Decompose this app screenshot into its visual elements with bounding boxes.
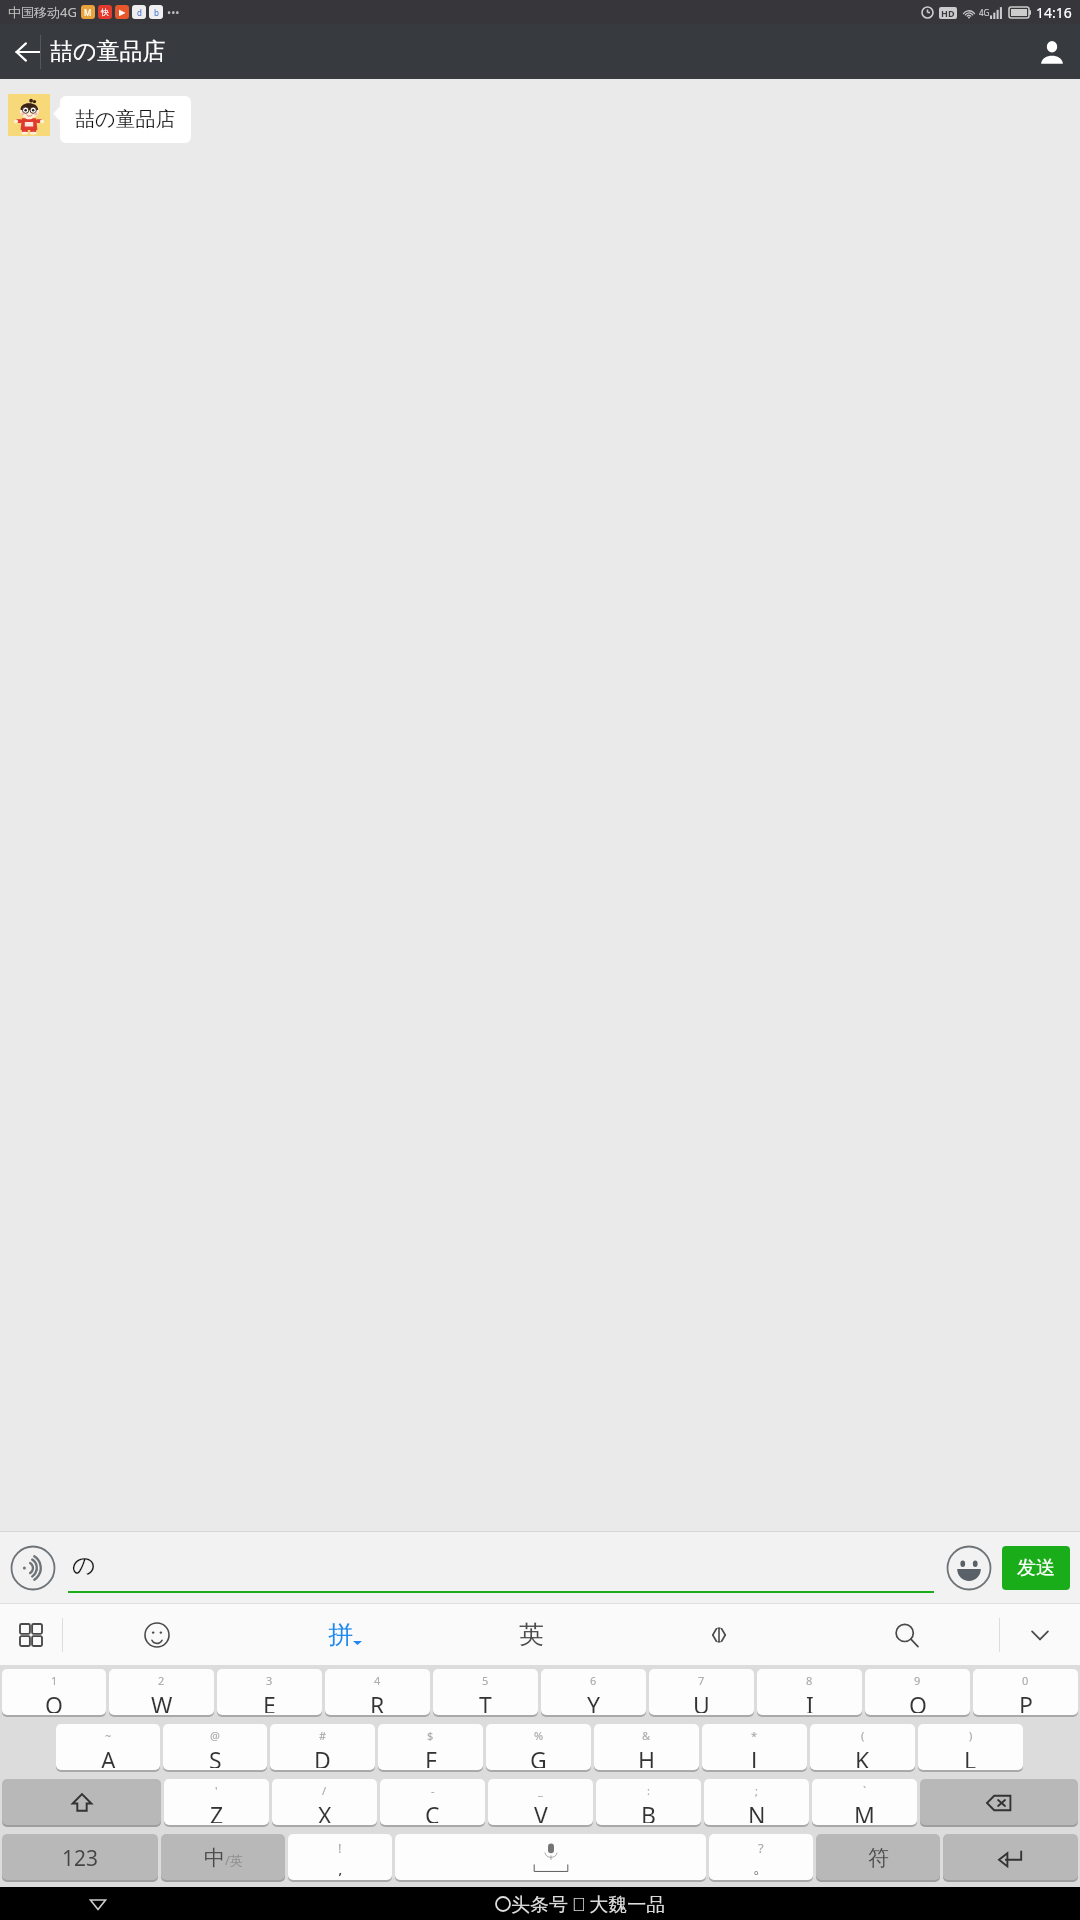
staticText: K	[855, 1744, 870, 1768]
staticText: *	[751, 1728, 758, 1743]
button[interactable]: 2	[109, 1669, 214, 1717]
button[interactable]: 9	[865, 1669, 970, 1717]
staticText: 2	[158, 1673, 165, 1688]
staticText: ?	[758, 1839, 764, 1857]
staticText: Q	[45, 1689, 63, 1713]
button[interactable]: Back	[0, 24, 56, 79]
button[interactable]: )	[918, 1724, 1023, 1772]
staticText: S	[209, 1744, 222, 1768]
staticText: 喆の童品店	[50, 37, 166, 66]
staticText: /英	[225, 1851, 243, 1869]
button[interactable]: Space	[395, 1834, 706, 1882]
staticText: '	[215, 1783, 218, 1798]
button[interactable]: #	[270, 1724, 375, 1772]
button[interactable]: Hide keyboard	[1000, 1604, 1080, 1665]
staticText: b	[154, 7, 159, 18]
button[interactable]: 4	[325, 1669, 430, 1717]
staticText: M	[84, 7, 92, 18]
button[interactable]: ~	[56, 1724, 160, 1772]
staticText: U	[693, 1689, 710, 1713]
button[interactable]	[8, 94, 50, 136]
button[interactable]: 英	[438, 1604, 625, 1665]
button[interactable]: Symbols	[816, 1834, 940, 1882]
button[interactable]: Emoji panel	[63, 1604, 251, 1665]
staticText: Y	[587, 1689, 601, 1713]
staticText: #	[319, 1728, 327, 1743]
staticText: N	[748, 1799, 766, 1823]
button[interactable]: 7	[649, 1669, 754, 1717]
staticText: ;	[755, 1783, 758, 1798]
button[interactable]: Profile	[1024, 24, 1080, 79]
button[interactable]: 5	[433, 1669, 538, 1717]
staticText: A	[101, 1744, 116, 1768]
button[interactable]: Backspace	[920, 1779, 1078, 1827]
button[interactable]: *	[702, 1724, 807, 1772]
button[interactable]: 3	[217, 1669, 322, 1717]
staticText: 0	[1022, 1673, 1029, 1688]
button[interactable]: Shift	[2, 1779, 161, 1827]
button[interactable]: 拼	[251, 1604, 438, 1665]
staticText: 5	[482, 1673, 489, 1688]
button[interactable]: &	[594, 1724, 699, 1772]
staticText: 1	[51, 1673, 58, 1688]
button[interactable]: 8	[757, 1669, 862, 1717]
staticText: I	[806, 1689, 814, 1713]
button[interactable]: ?	[709, 1834, 813, 1882]
staticText: ,	[338, 1857, 343, 1876]
staticText: 8	[806, 1673, 813, 1688]
button[interactable]: 喆の童品店	[60, 96, 191, 143]
staticText: 123	[62, 1844, 99, 1873]
button[interactable]: -	[380, 1779, 485, 1827]
staticText: !	[338, 1839, 342, 1857]
button[interactable]: 发送	[1002, 1546, 1070, 1590]
button[interactable]: _	[488, 1779, 593, 1827]
button[interactable]: !	[288, 1834, 392, 1882]
button[interactable]: :	[596, 1779, 701, 1827]
button[interactable]: 6	[541, 1669, 646, 1717]
staticText: L	[964, 1744, 977, 1768]
staticText: H	[638, 1744, 656, 1768]
staticText: G	[530, 1744, 547, 1768]
staticText: %	[534, 1728, 544, 1743]
button[interactable]: ;	[704, 1779, 809, 1827]
staticText: F	[425, 1744, 437, 1768]
button[interactable]: Back	[80, 1887, 116, 1920]
staticText: )	[969, 1728, 973, 1743]
button[interactable]: Chinese English toggle	[161, 1834, 285, 1882]
button[interactable]: Search	[812, 1604, 999, 1665]
staticText: (	[861, 1728, 865, 1743]
staticText: 7	[698, 1673, 705, 1688]
staticText: D	[314, 1744, 331, 1768]
staticText: HD	[941, 7, 955, 19]
button[interactable]: '	[164, 1779, 269, 1827]
button[interactable]: $	[378, 1724, 483, 1772]
button[interactable]: @	[163, 1724, 267, 1772]
button[interactable]: Emoji	[946, 1545, 992, 1591]
button[interactable]: Cursor control	[625, 1604, 812, 1665]
button[interactable]: 1	[2, 1669, 106, 1717]
staticText: @	[210, 1728, 220, 1743]
staticText: 4G	[979, 7, 990, 18]
button[interactable]: Numbers	[2, 1834, 158, 1882]
button[interactable]: `	[812, 1779, 917, 1827]
button[interactable]: /	[272, 1779, 377, 1827]
staticText: R	[370, 1689, 385, 1713]
button[interactable]: Enter	[943, 1834, 1078, 1882]
staticText: /	[322, 1783, 327, 1798]
staticText: •••	[167, 5, 180, 20]
staticText: の	[72, 1551, 96, 1580]
staticText: 4	[374, 1673, 381, 1688]
staticText: ~	[105, 1728, 112, 1743]
staticText: 中国移动4G	[8, 3, 77, 21]
button[interactable]: 0	[973, 1669, 1078, 1717]
staticText: 9	[914, 1673, 921, 1688]
staticText: O	[909, 1689, 927, 1713]
button[interactable]: %	[486, 1724, 591, 1772]
button[interactable]: Keyboard layouts	[0, 1604, 62, 1665]
button[interactable]: の	[68, 1543, 934, 1593]
button[interactable]: Voice input	[10, 1545, 56, 1591]
staticText: 符	[868, 1845, 889, 1871]
staticText: Z	[210, 1799, 224, 1823]
button[interactable]: (	[810, 1724, 915, 1772]
staticText: &	[642, 1728, 651, 1743]
